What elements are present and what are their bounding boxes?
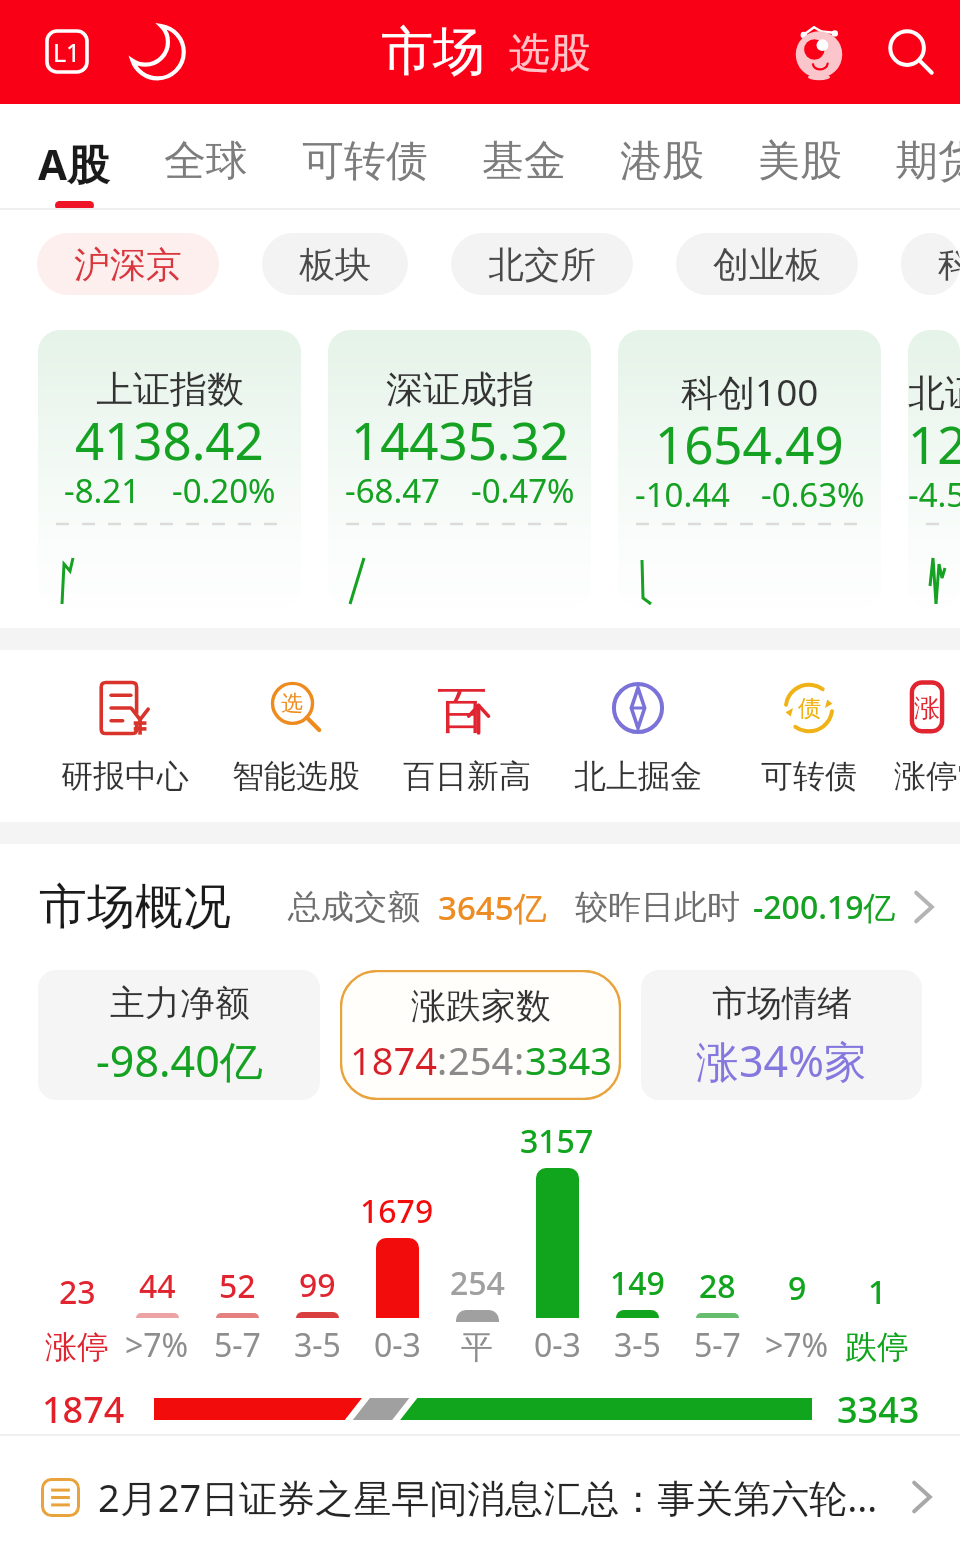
- staticText: 2月27日证券之星早间消息汇总：事关第六轮…: [98, 1471, 878, 1523]
- staticText: 创业板: [713, 242, 821, 287]
- staticText: 5-7: [214, 1323, 261, 1367]
- button[interactable]: 涨跌家数: [340, 970, 621, 1100]
- staticText: 跌停: [845, 1327, 909, 1367]
- staticText: 债: [798, 694, 821, 723]
- button[interactable]: AI assistant: [783, 16, 855, 88]
- button[interactable]: 市场情绪: [641, 970, 922, 1100]
- staticText: 板块: [299, 242, 371, 287]
- staticText: 百日新高: [403, 756, 531, 796]
- staticText: 可转债: [302, 135, 428, 188]
- staticText: L1: [53, 35, 81, 69]
- staticText: 研报中心: [61, 756, 189, 796]
- staticText: :: [514, 1034, 525, 1086]
- button[interactable]: Search: [878, 19, 944, 85]
- button[interactable]: 上证指数: [38, 330, 301, 608]
- staticText: -0.47%: [471, 468, 575, 513]
- button[interactable]: A股: [38, 104, 110, 210]
- staticText: 1: [868, 1270, 887, 1314]
- staticText: 较昨日此时: [575, 886, 740, 928]
- staticText: -68.47: [345, 468, 440, 513]
- staticText: 3645亿: [438, 885, 547, 930]
- staticText: 1654.49: [655, 409, 844, 478]
- staticText: 149: [610, 1261, 665, 1305]
- button[interactable]: 研报中心: [39, 650, 210, 796]
- staticText: 全球: [164, 135, 248, 188]
- staticText: 52: [219, 1264, 256, 1308]
- button[interactable]: 市场概况: [0, 844, 960, 970]
- staticText: -0.63%: [761, 472, 865, 517]
- staticText: 4138.42: [75, 405, 264, 474]
- staticText: 期货: [896, 135, 960, 188]
- button[interactable]: 北证50: [908, 330, 960, 608]
- staticText: 44: [139, 1264, 176, 1308]
- staticText: 上证指数: [96, 366, 244, 413]
- button[interactable]: 涨: [894, 650, 960, 796]
- button[interactable]: 选: [210, 650, 381, 796]
- button[interactable]: 2月27日证券之星早间消息汇总：事关第六轮…: [0, 1450, 960, 1544]
- staticText: 主力净额: [110, 981, 250, 1025]
- staticText: 北上掘金: [574, 756, 702, 796]
- staticText: -200.19亿: [753, 885, 896, 929]
- staticText: 23: [59, 1270, 96, 1314]
- staticText: 涨34%家: [696, 1031, 867, 1090]
- staticText: 科创100: [681, 366, 819, 417]
- staticText: A股: [38, 135, 110, 192]
- staticText: 市场: [381, 19, 485, 85]
- staticText: 0-3: [534, 1323, 581, 1367]
- staticText: 市场情绪: [712, 981, 852, 1025]
- staticText: >7%: [125, 1323, 189, 1367]
- staticText: 99: [299, 1263, 336, 1307]
- staticText: 沪深京: [74, 242, 182, 287]
- staticText: 涨停: [45, 1327, 109, 1367]
- staticText: 涨: [914, 692, 940, 725]
- staticText: 3343: [525, 1034, 612, 1086]
- staticText: 基金: [482, 135, 566, 188]
- button[interactable]: L1 quote level: [33, 18, 101, 86]
- button[interactable]: 沪深京: [37, 233, 219, 295]
- staticText: :: [437, 1034, 448, 1086]
- staticText: 港股: [620, 135, 704, 188]
- staticText: 3343: [837, 1385, 920, 1434]
- button[interactable]: 科创板: [901, 233, 960, 295]
- staticText: -0.20%: [172, 468, 276, 513]
- staticText: 1874: [350, 1034, 437, 1086]
- staticText: 美股: [758, 135, 842, 188]
- button[interactable]: 美股: [758, 104, 842, 210]
- button[interactable]: 全球: [164, 104, 248, 210]
- staticText: 0-3: [374, 1323, 421, 1367]
- staticText: 1251.33: [908, 409, 960, 478]
- button[interactable]: 基金: [482, 104, 566, 210]
- staticText: 市场概况: [39, 877, 231, 937]
- staticText: 254: [448, 1034, 514, 1086]
- staticText: -10.44: [635, 472, 730, 517]
- staticText: 智能选股: [232, 756, 360, 796]
- button[interactable]: 科创100: [618, 330, 881, 608]
- staticText: 1874: [42, 1385, 125, 1434]
- staticText: 3157: [520, 1119, 594, 1163]
- staticText: -4.55: [908, 472, 960, 517]
- button[interactable]: 深证成指: [328, 330, 591, 608]
- staticText: 北交所: [488, 242, 596, 287]
- button[interactable]: 港股: [620, 104, 704, 210]
- staticText: 28: [699, 1264, 736, 1308]
- button[interactable]: 创业板: [676, 233, 858, 295]
- button[interactable]: 债: [723, 650, 894, 796]
- button[interactable]: 板块: [262, 233, 408, 295]
- staticText: 254: [450, 1261, 505, 1305]
- button[interactable]: 可转债: [302, 104, 428, 210]
- button[interactable]: 北上掘金: [552, 650, 723, 796]
- staticText: 选: [281, 690, 303, 718]
- button[interactable]: 主力净额: [38, 970, 320, 1100]
- button[interactable]: 北交所: [451, 233, 633, 295]
- staticText: 深证成指: [386, 366, 534, 413]
- staticText: 选股: [509, 28, 591, 80]
- staticText: 9: [788, 1266, 807, 1310]
- staticText: -98.40亿: [96, 1031, 263, 1090]
- button[interactable]: Night mode: [126, 20, 190, 84]
- button[interactable]: 期货: [896, 104, 960, 210]
- button[interactable]: 百: [381, 650, 552, 796]
- staticText: 北证50: [908, 366, 960, 417]
- staticText: 3-5: [614, 1323, 661, 1367]
- staticText: >7%: [765, 1323, 829, 1367]
- staticText: 5-7: [694, 1323, 741, 1367]
